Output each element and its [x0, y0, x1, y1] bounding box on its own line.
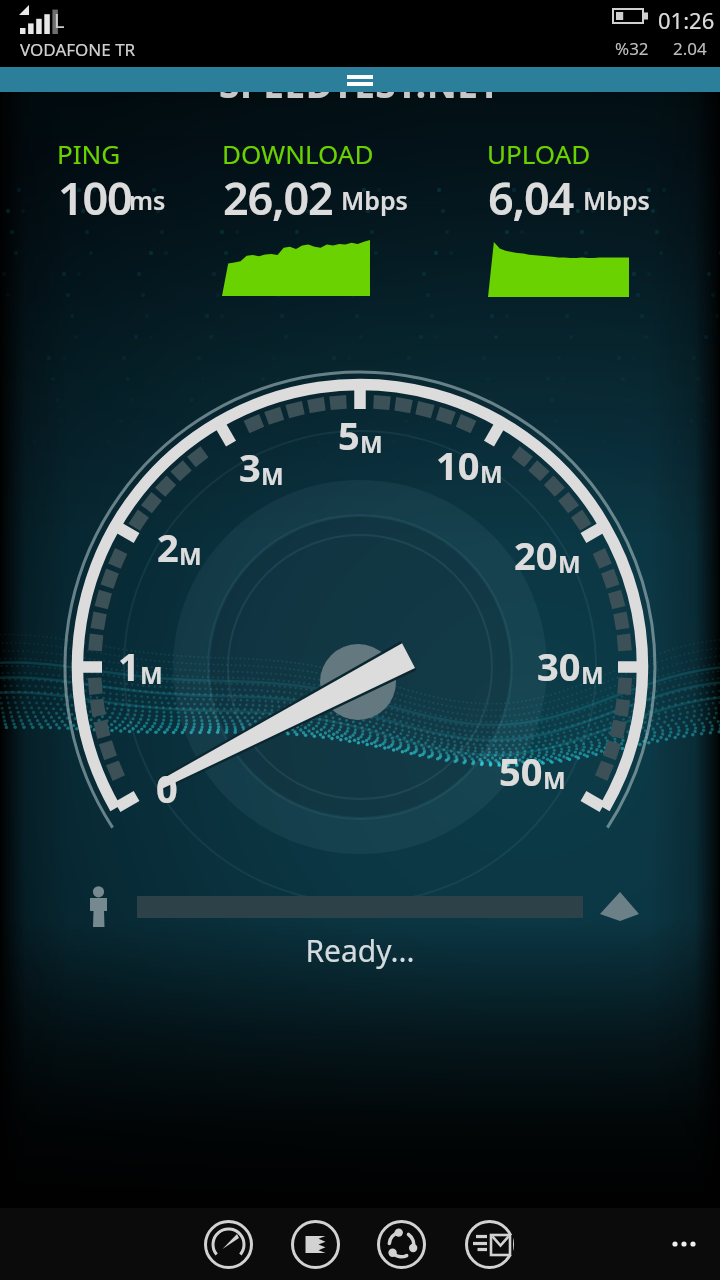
button[interactable]: More options: [658, 1218, 710, 1270]
staticText: L: [54, 7, 65, 34]
staticText: 26,02: [223, 167, 333, 228]
staticText: M: [261, 459, 284, 492]
staticText: 5: [338, 409, 360, 461]
staticText: 30: [537, 640, 581, 692]
staticText: M: [581, 658, 604, 691]
staticText: M: [179, 539, 202, 572]
staticText: VODAFONE TR: [20, 38, 136, 61]
staticText: M: [558, 547, 581, 580]
staticText: M: [360, 427, 383, 460]
button[interactable]: Results: [287, 1216, 344, 1273]
staticText: M: [543, 763, 566, 796]
staticText: 100: [58, 167, 132, 228]
button[interactable]: Coverage: [373, 1216, 430, 1273]
staticText: 01:26: [658, 5, 715, 35]
staticText: DOWNLOAD: [222, 136, 374, 171]
staticText: Mbps: [341, 183, 408, 217]
staticText: 50: [499, 745, 543, 797]
button[interactable]: Menu: [0, 67, 720, 92]
staticText: ms: [129, 183, 166, 217]
staticText: 0: [156, 762, 178, 814]
staticText: M: [140, 658, 163, 691]
staticText: PING: [57, 136, 121, 171]
staticText: 20: [514, 529, 558, 581]
staticText: 10: [436, 439, 480, 491]
staticText: 2: [157, 521, 179, 573]
staticText: UPLOAD: [487, 136, 591, 171]
staticText: 1: [118, 640, 140, 692]
button[interactable]: Share result: [461, 1216, 518, 1273]
button[interactable]: Speedtest: [200, 1216, 257, 1273]
staticText: 6,04: [488, 167, 573, 228]
staticText: Ready...: [0, 930, 720, 971]
staticText: 3: [239, 441, 261, 493]
staticText: %32: [615, 37, 649, 60]
staticText: 2.04: [673, 37, 707, 60]
staticText: SPEEDTEST.NET: [219, 58, 501, 108]
staticText: Mbps: [583, 183, 650, 217]
staticText: M: [480, 457, 503, 490]
